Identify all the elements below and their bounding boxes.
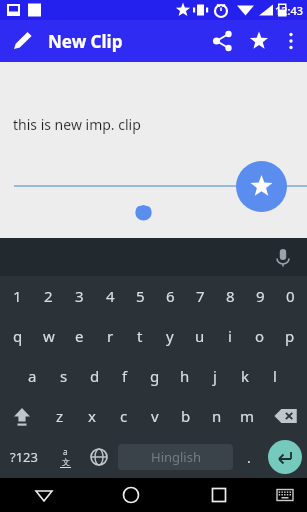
button[interactable]: Back (0, 478, 87, 512)
staticText: 1 (13, 286, 22, 306)
button[interactable]: s (48, 356, 79, 396)
staticText: d (90, 366, 100, 386)
staticText: Hinglish (151, 448, 201, 466)
button[interactable]: x (76, 396, 108, 436)
staticText: New Clip (48, 30, 123, 53)
staticText: b (181, 406, 191, 426)
button[interactable]: v (139, 396, 170, 436)
button[interactable]: y (155, 316, 185, 356)
button[interactable]: c (108, 396, 139, 436)
button[interactable]: 3 (64, 276, 95, 316)
staticText: v (151, 406, 159, 426)
button[interactable]: 9 (245, 276, 275, 316)
button[interactable]: ?123 (0, 436, 48, 478)
button[interactable]: 2 (33, 276, 64, 316)
staticText: t (137, 326, 143, 346)
button[interactable]: 8 (215, 276, 245, 316)
staticText: x (88, 406, 96, 426)
staticText: m (240, 406, 255, 426)
button[interactable]: Backspace (263, 396, 307, 436)
button[interactable]: i (215, 316, 245, 356)
button[interactable]: Home (87, 478, 175, 512)
staticText: w (43, 326, 55, 346)
button[interactable]: o (245, 316, 275, 356)
button[interactable]: f (110, 356, 140, 396)
button[interactable]: Favourite (241, 23, 277, 59)
staticText: 9 (256, 286, 265, 306)
staticText: . (247, 448, 251, 467)
button[interactable]: w (33, 316, 64, 356)
staticText: 3 (75, 286, 84, 306)
button[interactable]: k (230, 356, 260, 396)
button[interactable]: Change language (48, 436, 82, 478)
button[interactable]: Edit (7, 25, 39, 57)
staticText: l (273, 366, 277, 386)
button[interactable]: 6 (155, 276, 185, 316)
button[interactable]: 1 (2, 276, 33, 316)
staticText: i (228, 326, 232, 346)
button[interactable]: z (44, 396, 76, 436)
staticText: 4 (106, 286, 115, 306)
staticText: g (150, 366, 160, 386)
staticText: p (285, 326, 295, 346)
staticText: ?123 (10, 448, 38, 466)
staticText: c (120, 406, 128, 426)
staticText: j (213, 366, 217, 386)
staticText: 12:43 (275, 3, 304, 18)
staticText: u (195, 326, 205, 346)
button[interactable]: b (170, 396, 201, 436)
button[interactable]: Hinglish (118, 444, 233, 470)
staticText: h (180, 366, 190, 386)
button[interactable]: 0 (275, 276, 305, 316)
button[interactable]: Recents (175, 478, 263, 512)
button[interactable]: t (125, 316, 155, 356)
button[interactable]: j (200, 356, 230, 396)
button[interactable]: More options (277, 27, 305, 55)
button[interactable]: a (17, 356, 48, 396)
button[interactable]: e (64, 316, 95, 356)
staticText: k (241, 366, 250, 386)
button[interactable]: r (95, 316, 125, 356)
staticText: 文 (62, 457, 70, 467)
staticText: y (166, 326, 174, 346)
button[interactable]: . (235, 436, 263, 478)
staticText: q (13, 326, 23, 346)
staticText: n (212, 406, 222, 426)
button[interactable]: Globe (82, 436, 116, 478)
button[interactable]: u (185, 316, 215, 356)
button[interactable]: n (201, 396, 232, 436)
staticText: 6 (166, 286, 175, 306)
button[interactable]: Favourite (236, 161, 287, 212)
button[interactable]: q (2, 316, 33, 356)
button[interactable]: Voice input (269, 243, 297, 271)
button[interactable]: g (140, 356, 170, 396)
button[interactable]: p (275, 316, 305, 356)
staticText: f (122, 366, 128, 386)
button[interactable]: h (170, 356, 200, 396)
staticText: a (63, 446, 68, 457)
button[interactable]: Shift (0, 396, 44, 436)
staticText: 0 (286, 286, 295, 306)
staticText: this is new imp. clip (13, 115, 141, 134)
button[interactable]: Enter (268, 440, 302, 474)
button[interactable]: 7 (185, 276, 215, 316)
staticText: r (107, 326, 114, 346)
button[interactable]: d (79, 356, 110, 396)
button[interactable]: l (260, 356, 290, 396)
staticText: 7 (196, 286, 205, 306)
button[interactable]: Share (205, 23, 241, 59)
button[interactable]: m (232, 396, 263, 436)
staticText: z (56, 406, 64, 426)
staticText: 8 (226, 286, 235, 306)
staticText: s (60, 366, 68, 386)
staticText: a (28, 366, 37, 386)
button[interactable]: 4 (95, 276, 125, 316)
staticText: e (75, 326, 84, 346)
button[interactable]: 5 (125, 276, 155, 316)
staticText: 5 (136, 286, 145, 306)
staticText: 2 (44, 286, 53, 306)
staticText: o (255, 326, 265, 346)
button[interactable]: Hide keyboard (263, 478, 307, 512)
